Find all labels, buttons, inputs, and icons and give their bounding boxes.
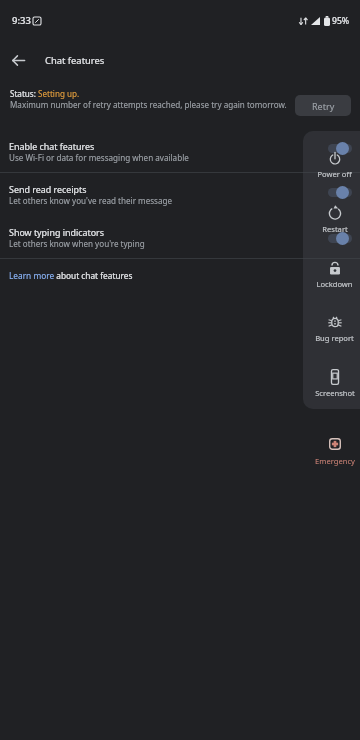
button[interactable]: Enable chat features [0,131,360,172]
staticText: Restart [322,224,348,234]
staticText: Let others know when you're typing [9,238,145,249]
button[interactable]: Send read receipts [0,173,360,216]
staticText: Use Wi-Fi or data for messaging when ava… [9,152,189,163]
staticText: Screenshot [315,388,355,398]
staticText: 95% [332,15,350,27]
button[interactable]: Bug report [306,312,360,345]
staticText: Learn more about chat features [9,270,133,281]
staticText: Lockdown [316,279,353,289]
button[interactable]: Lockdown [306,258,360,291]
button[interactable]: Toggle [328,142,352,155]
button[interactable]: Restart [306,203,360,236]
button[interactable]: Power off [306,148,360,181]
staticText: Retry [312,100,335,112]
button[interactable]: Show typing indicators [0,216,360,258]
staticText: Bug report [315,333,354,343]
staticText: Enable chat features [9,140,95,152]
staticText: Maximum number of retry attempts reached… [10,99,287,110]
button[interactable]: Emergency [306,436,360,468]
staticText: Emergency [315,456,355,466]
staticText: Send read receipts [9,183,87,195]
button[interactable]: Screenshot [306,367,360,400]
staticText: Let others know you've read their messag… [9,195,173,206]
staticText: 9:33 [12,14,31,27]
staticText: Show typing indicators [9,226,104,238]
button[interactable]: Toggle [328,186,352,199]
staticText: Power off [317,169,352,179]
staticText: Chat features [45,54,105,67]
button[interactable]: Learn more about chat features [0,259,360,292]
staticText: Status: Setting up. [10,88,80,99]
button[interactable]: Back [0,42,36,78]
button[interactable]: Retry [295,95,351,116]
button[interactable]: Toggle [328,232,352,245]
